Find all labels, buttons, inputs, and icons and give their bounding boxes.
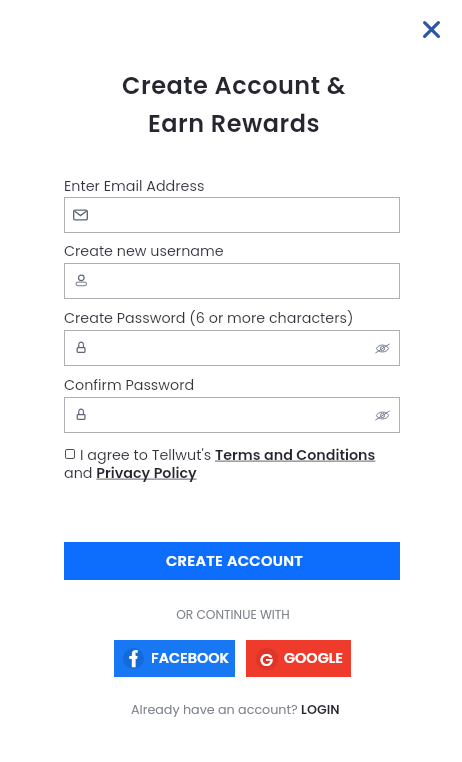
staticText: CREATE ACCOUNT (166, 551, 304, 572)
button[interactable]: CREATE ACCOUNT (64, 542, 400, 580)
staticText: Create new username (64, 241, 224, 261)
staticText: Confirm Password (64, 375, 195, 395)
button[interactable]: FACEBOOK (114, 640, 235, 677)
button[interactable]: Show password (64, 330, 400, 366)
button[interactable]: Show password (64, 397, 400, 433)
staticText: OR CONTINUE WITH (65, 606, 401, 623)
button[interactable]: Show password (372, 338, 392, 358)
button[interactable] (64, 197, 400, 233)
button[interactable]: Agree to terms checkbox (65, 449, 75, 459)
staticText: Create Password (6 or more characters) (64, 308, 354, 328)
button[interactable]: Show password (372, 405, 392, 425)
button[interactable]: Close (413, 11, 449, 47)
staticText: I agree to Tellwut's Terms and Condition… (80, 445, 376, 465)
staticText: and Privacy Policy (64, 463, 197, 483)
button[interactable]: G (246, 640, 351, 677)
staticText: Enter Email Address (64, 176, 205, 196)
staticText: FACEBOOK (151, 648, 230, 668)
button[interactable]: Already have an account? LOGIN (131, 701, 340, 719)
button[interactable]: I agree to Tellwut's Terms and Condition… (80, 445, 376, 465)
staticText: G (260, 648, 274, 670)
button[interactable] (64, 263, 400, 299)
button[interactable]: and Privacy Policy (64, 463, 197, 483)
staticText: Already have an account? LOGIN (131, 701, 340, 719)
staticText: GOOGLE (284, 648, 343, 668)
staticText: Create Account & Earn Rewards (66, 69, 402, 141)
